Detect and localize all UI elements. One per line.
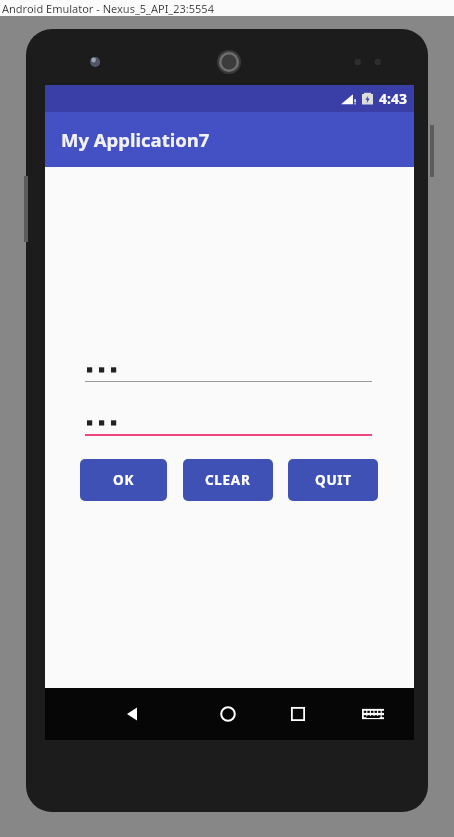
- button[interactable]: QUIT: [288, 459, 378, 501]
- staticText: 4:43: [379, 89, 407, 108]
- button[interactable]: [85, 360, 372, 382]
- button[interactable]: CLEAR: [183, 459, 273, 501]
- button[interactable]: Recent apps: [277, 693, 319, 735]
- button[interactable]: Back: [111, 693, 153, 735]
- staticText: Android Emulator - Nexus_5_API_23:5554: [2, 1, 214, 16]
- button[interactable]: Keyboard: [352, 693, 394, 735]
- button[interactable]: OK: [80, 459, 167, 501]
- staticText: OK: [113, 471, 135, 489]
- staticText: My Application7: [61, 127, 210, 152]
- staticText: CLEAR: [205, 471, 251, 489]
- staticText: QUIT: [315, 471, 352, 489]
- button[interactable]: [85, 413, 372, 436]
- button[interactable]: Home: [207, 693, 249, 735]
